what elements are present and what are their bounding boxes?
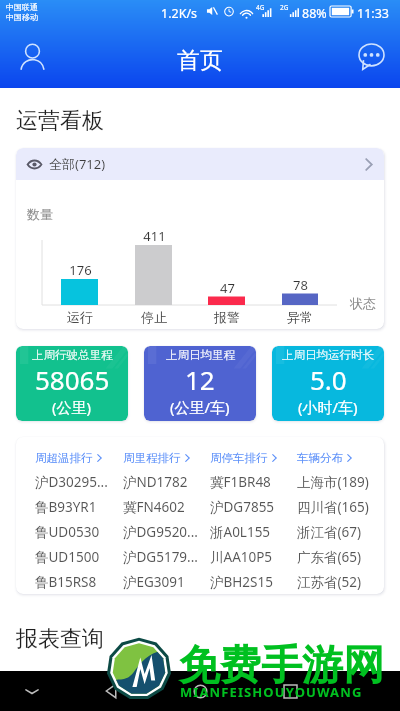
staticText: 中国移动 [6,12,38,22]
staticText: 78 [293,276,308,294]
staticText: 鲁B15RS8 [35,573,97,591]
staticText: 报表查询 [16,625,104,653]
staticText: 411 [143,227,166,245]
staticText: 周超温排行 [35,451,93,465]
staticText: 状态 [350,295,376,311]
staticText: 停止 [141,309,167,325]
staticText: 4G [256,3,265,12]
staticText: 沪DG9520... [123,523,198,541]
staticText: 免费手游网 [179,640,384,692]
staticText: 浙A0L155 [210,523,271,541]
staticText: 1.2K/s [161,5,198,22]
staticText: 沪ND1782 [123,473,188,491]
button[interactable]: Home [180,671,220,711]
staticText: 车辆分布 [297,451,343,465]
staticText: 47 [220,279,235,297]
staticText: 首页 [177,46,223,75]
staticText: 11:33 [357,5,389,22]
staticText: 沪DG7855 [210,498,275,516]
staticText: 176 [69,261,92,279]
staticText: 川AA10P5 [210,548,273,566]
staticText: 沪D30295... [35,473,108,491]
staticText: 周里程排行 [123,451,181,465]
button[interactable]: Hide keyboard [12,671,52,711]
staticText: 数量 [27,206,53,222]
staticText: 5.0 [310,362,347,397]
staticText: 四川省(165) [297,498,369,516]
staticText: 运营看板 [16,107,104,135]
staticText: 88% [302,5,327,22]
button[interactable]: 周里程排行 [123,447,210,469]
staticText: 沪BH2S15 [210,573,273,591]
staticText: 全部(712) [49,155,106,173]
staticText: 异常 [287,309,313,325]
staticText: 上周行驶总里程 [32,348,113,362]
staticText: 报警 [214,309,240,325]
staticText: 上周日均里程 [166,348,235,362]
staticText: 沪DG5179... [123,548,198,566]
button[interactable]: 车辆分布 [297,447,384,469]
staticText: 江苏省(52) [297,573,362,591]
staticText: (小时/车) [298,397,358,417]
staticText: 中国联通 [6,2,38,12]
button[interactable]: 上周行驶总里程 [16,346,128,421]
staticText: (公里) [52,397,92,417]
button[interactable]: 上周日均运行时长 [272,346,384,421]
staticText: 12 [185,362,215,397]
button[interactable]: 上周日均里程 [144,346,256,421]
button[interactable]: Recents [270,671,310,711]
staticText: 沪EG3091 [123,573,185,591]
staticText: 浙江省(67) [297,523,362,541]
staticText: 冀FN4602 [123,498,185,516]
staticText: 58065 [35,362,110,397]
button[interactable]: 全部(712) [16,148,384,180]
staticText: 鲁UD1500 [35,548,100,566]
button[interactable]: 周超温排行 [35,447,123,469]
staticText: 运行 [67,309,93,325]
button[interactable]: Profile [10,35,54,79]
staticText: 上周日均运行时长 [282,348,374,362]
button[interactable]: 周停车排行 [210,447,297,469]
button[interactable]: Back [90,671,130,711]
staticText: 鲁B93YR1 [35,498,97,516]
staticText: 2G [280,3,289,12]
staticText: 广东省(65) [297,548,362,566]
button[interactable]: Messages [349,35,393,79]
staticText: MIANFEISHOUYOUWANG [180,683,363,701]
staticText: 周停车排行 [210,451,268,465]
staticText: 上海市(189) [297,473,369,491]
staticText: (公里/车) [170,397,230,417]
staticText: 冀F1BR48 [210,473,271,491]
staticText: 鲁UD0530 [35,523,100,541]
